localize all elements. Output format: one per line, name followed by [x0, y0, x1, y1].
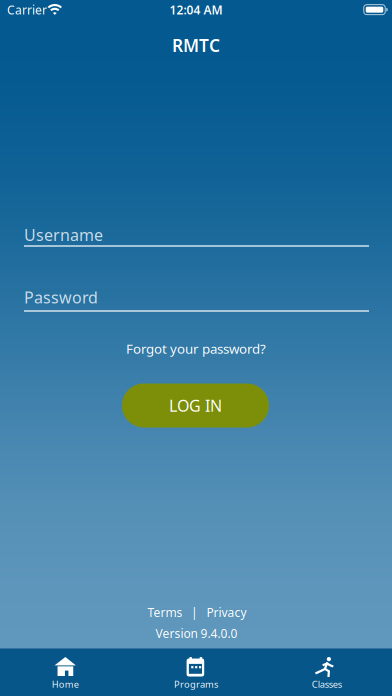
staticText: 12:04 AM — [169, 2, 222, 18]
staticText: LOG IN — [169, 395, 222, 416]
staticText: Version 9.4.0.0 — [155, 625, 237, 641]
button[interactable]: Privacy — [206, 604, 246, 620]
staticText: Privacy — [206, 604, 246, 620]
button[interactable]: Programs — [131, 648, 261, 696]
staticText: Terms — [147, 604, 182, 620]
button[interactable]: Forgot your password? — [126, 340, 266, 357]
staticText: Classes — [312, 678, 342, 690]
staticText: Forgot your password? — [126, 340, 266, 357]
staticText: Programs — [174, 678, 218, 690]
button[interactable]: Home — [0, 648, 131, 696]
staticText: Carrier — [7, 2, 47, 18]
staticText: Username — [24, 224, 103, 245]
staticText: Password — [24, 287, 98, 308]
button[interactable]: Password — [24, 284, 369, 310]
button[interactable]: Classes — [261, 648, 392, 696]
button[interactable]: Username — [24, 222, 369, 248]
staticText: RMTC — [172, 34, 220, 57]
button[interactable]: Terms — [147, 604, 182, 620]
button[interactable]: LOG IN — [122, 383, 269, 427]
staticText: Home — [52, 678, 79, 690]
staticText: | — [191, 604, 198, 620]
